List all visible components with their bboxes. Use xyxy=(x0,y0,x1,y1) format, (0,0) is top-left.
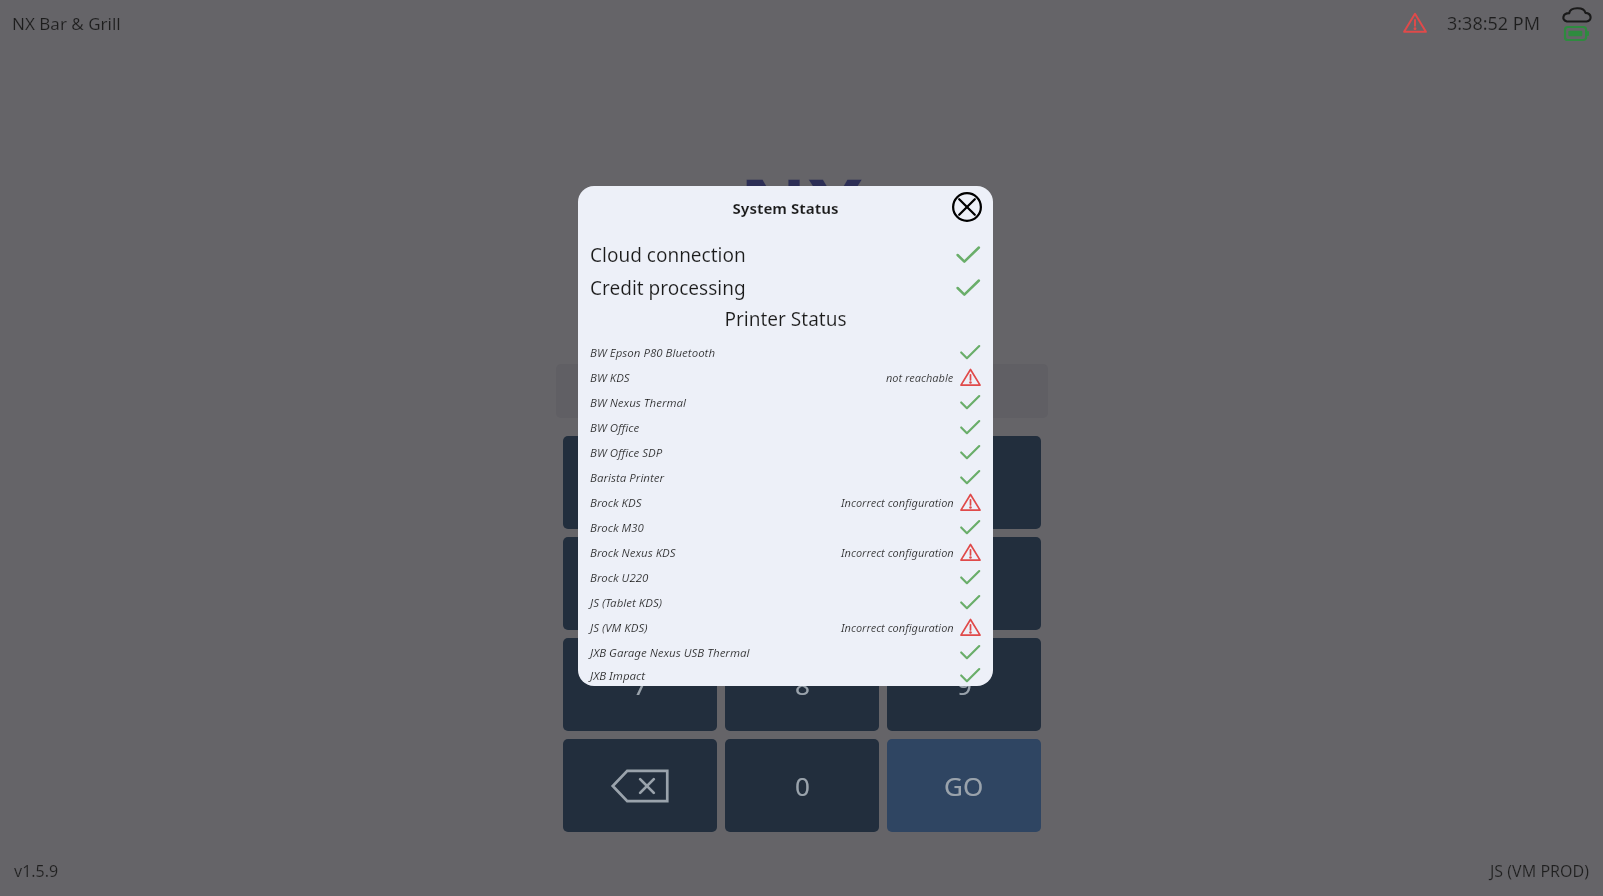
button[interactable]: JXB Impact xyxy=(590,665,981,686)
staticText: Brock KDS xyxy=(590,495,642,511)
staticText: BW Nexus Thermal xyxy=(590,395,687,411)
button[interactable]: GO xyxy=(887,739,1041,832)
button[interactable]: BW Office xyxy=(590,415,981,440)
button[interactable]: 6 xyxy=(887,537,1041,630)
staticText: BW Office xyxy=(590,420,640,436)
staticText: Brock M30 xyxy=(590,520,644,536)
staticText: Incorrect configuration xyxy=(841,495,954,510)
staticText: JXB Garage Nexus USB Thermal xyxy=(590,645,750,661)
button[interactable]: Close xyxy=(952,192,982,222)
button[interactable]: 8 xyxy=(725,638,879,731)
staticText: Cloud connection xyxy=(590,242,746,268)
button[interactable]: 5 xyxy=(725,537,879,630)
button[interactable]: 4 xyxy=(563,537,717,630)
button[interactable] xyxy=(556,364,1048,418)
staticText: 3 xyxy=(957,465,972,500)
button[interactable]: Backspace xyxy=(563,739,717,832)
staticText: Brock Nexus KDS xyxy=(590,545,676,561)
staticText: 3:38:52 PM xyxy=(1447,11,1541,36)
button[interactable]: BW Office SDP xyxy=(590,440,981,465)
button[interactable]: JS (VM KDS) xyxy=(590,615,981,640)
button[interactable]: JXB Garage Nexus USB Thermal xyxy=(590,640,981,665)
staticText: Brock U220 xyxy=(590,570,649,586)
staticText: NX xyxy=(739,150,864,264)
staticText: BW Epson P80 Bluetooth xyxy=(590,345,716,361)
staticText: not reachable xyxy=(886,370,954,385)
button[interactable]: Brock U220 xyxy=(590,565,981,590)
staticText: 6 xyxy=(957,566,972,601)
staticText: GO xyxy=(944,768,984,803)
staticText: Incorrect configuration xyxy=(841,620,954,635)
staticText: 4 xyxy=(633,566,648,601)
button[interactable]: 7 xyxy=(563,638,717,731)
button[interactable]: Barista Printer xyxy=(590,465,981,490)
button[interactable]: Credit processing xyxy=(590,271,981,304)
staticText: 7 xyxy=(633,667,648,702)
button[interactable]: BW Nexus Thermal xyxy=(590,390,981,415)
button[interactable]: BW Epson P80 Bluetooth xyxy=(590,340,981,365)
staticText: v1.5.9 xyxy=(14,860,59,882)
staticText: 1 xyxy=(633,465,648,500)
staticText: NX Bar & Grill xyxy=(12,12,121,35)
button[interactable]: Brock KDS xyxy=(590,490,981,515)
staticText: 9 xyxy=(957,667,972,702)
staticText: BW KDS xyxy=(590,370,630,386)
button[interactable]: 0 xyxy=(725,739,879,832)
button[interactable]: BW KDS xyxy=(590,365,981,390)
button[interactable]: JS (Tablet KDS) xyxy=(590,590,981,615)
staticText: JS (Tablet KDS) xyxy=(590,595,663,611)
button[interactable]: 9 xyxy=(887,638,1041,731)
staticText: BW Office SDP xyxy=(590,445,663,461)
staticText: Credit processing xyxy=(590,275,746,301)
staticText: 0 xyxy=(795,768,810,803)
button[interactable]: Brock Nexus KDS xyxy=(590,540,981,565)
staticText: System Status xyxy=(578,198,993,218)
button[interactable]: 2 xyxy=(725,436,879,529)
staticText: 8 xyxy=(795,667,810,702)
button[interactable]: 3 xyxy=(887,436,1041,529)
staticText: Incorrect configuration xyxy=(841,545,954,560)
staticText: JXB Impact xyxy=(590,668,646,684)
staticText: Printer Status xyxy=(578,306,993,332)
staticText: Barista Printer xyxy=(590,470,665,486)
staticText: JS (VM PROD) xyxy=(1490,860,1589,882)
staticText: JS (VM KDS) xyxy=(590,620,648,636)
button[interactable]: Cloud connection xyxy=(590,238,981,271)
button[interactable]: Brock M30 xyxy=(590,515,981,540)
button[interactable]: 1 xyxy=(563,436,717,529)
